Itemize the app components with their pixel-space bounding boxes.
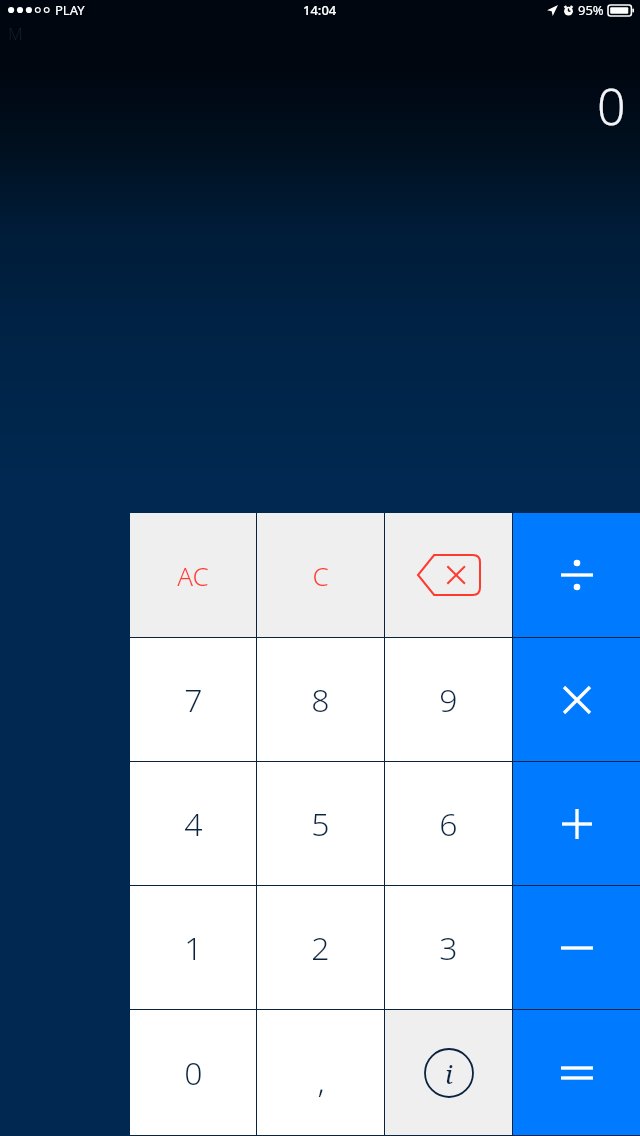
button[interactable]: 4 xyxy=(130,762,256,885)
button[interactable]: AC xyxy=(130,513,256,637)
button[interactable]: 6 xyxy=(385,762,512,885)
staticText: 14:04 xyxy=(303,1,337,19)
staticText: 0 xyxy=(597,72,626,140)
button[interactable]: Backspace xyxy=(385,513,512,637)
button[interactable]: Equals xyxy=(513,1010,640,1135)
staticText: 4 xyxy=(184,802,203,846)
button[interactable]: Plus xyxy=(513,762,640,885)
button[interactable]: 5 xyxy=(257,762,384,885)
staticText: 6 xyxy=(439,802,458,846)
button[interactable]: 9 xyxy=(385,638,512,761)
button[interactable]: C xyxy=(257,513,384,637)
button[interactable]: 8 xyxy=(257,638,384,761)
staticText: 3 xyxy=(439,926,458,970)
button[interactable]: 2 xyxy=(257,886,384,1009)
button[interactable]: 1 xyxy=(130,886,256,1009)
button[interactable]: 3 xyxy=(385,886,512,1009)
button[interactable]: 7 xyxy=(130,638,256,761)
button[interactable]: Minus xyxy=(513,886,640,1009)
staticText: 5 xyxy=(311,802,330,846)
staticText: 9 xyxy=(439,678,458,722)
button[interactable]: 0 xyxy=(130,1010,256,1135)
staticText: C xyxy=(312,558,329,593)
staticText: , xyxy=(317,1059,325,1103)
staticText: 1 xyxy=(184,926,203,970)
button[interactable]: Multiply xyxy=(513,638,640,761)
staticText: 2 xyxy=(311,926,330,970)
staticText: 0 xyxy=(184,1051,203,1095)
staticText: PLAY xyxy=(55,1,85,19)
staticText: M xyxy=(8,22,23,45)
staticText: 95% xyxy=(578,1,604,19)
staticText: i xyxy=(445,1056,453,1091)
button[interactable]: Divide xyxy=(513,513,640,637)
button[interactable]: , xyxy=(257,1010,384,1135)
staticText: 7 xyxy=(184,678,203,722)
staticText: 8 xyxy=(311,678,330,722)
button[interactable]: Info xyxy=(385,1010,512,1135)
staticText: AC xyxy=(177,558,209,593)
